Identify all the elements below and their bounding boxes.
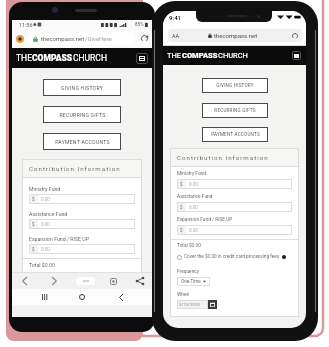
staticText: CHURCH: [218, 51, 248, 60]
staticText: 0.00: [189, 205, 198, 210]
staticText: 11:56: [19, 22, 33, 28]
staticText: RECURRING GIFTS: [214, 108, 256, 113]
button[interactable]: GIVING HISTORY: [43, 79, 121, 96]
staticText: $: [180, 228, 183, 233]
staticText: Ministry Fund: [29, 186, 61, 192]
staticText: $: [180, 205, 183, 210]
staticText: $: [32, 247, 35, 252]
staticText: THE: [16, 53, 32, 63]
button[interactable]: PAYMENT ACCOUNTS: [202, 127, 268, 142]
staticText: COMPASS: [182, 51, 218, 60]
button[interactable]: Menu: [136, 53, 148, 64]
button[interactable]: GIVING HISTORY: [202, 78, 268, 93]
button[interactable]: PAYMENT ACCOUNTS: [43, 133, 121, 150]
staticText: RECURRING GIFTS: [59, 112, 106, 118]
staticText: Expansion Fund / RISE UP: [29, 236, 89, 242]
button[interactable]: Forward: [46, 273, 62, 289]
staticText: thecompass.net: [41, 35, 85, 42]
staticText: Total $0.00: [29, 262, 55, 268]
staticText: 0.00: [189, 182, 198, 187]
staticText: Assistance Fund: [29, 211, 68, 217]
button[interactable]: Home: [76, 277, 95, 285]
staticText: Cover the $0.00 in credit card processin…: [184, 254, 280, 260]
button[interactable]: $: [29, 244, 135, 254]
button[interactable]: $: [29, 219, 135, 229]
staticText: 0.00: [41, 247, 50, 252]
button[interactable]: $: [177, 225, 292, 235]
staticText: AA: [172, 33, 180, 39]
button[interactable]: Menu: [292, 51, 301, 60]
button[interactable]: Cover the $0.00 in credit card processin…: [177, 254, 286, 260]
staticText: Ministry Fund: [177, 171, 206, 177]
button[interactable]: RECURRING GIFTS: [43, 106, 121, 123]
button[interactable]: 3/10/2020: [177, 300, 208, 309]
staticText: Assistance Fund: [177, 194, 213, 200]
button[interactable]: $: [177, 179, 292, 189]
staticText: COMPASS: [32, 53, 73, 63]
staticText: GIVING HISTORY: [61, 85, 103, 91]
staticText: Contribution Information: [177, 154, 269, 161]
staticText: Expansion Fund / RISE UP: [177, 217, 233, 223]
button[interactable]: Reload: [139, 33, 150, 44]
staticText: 0.00: [41, 197, 50, 202]
staticText: When: [177, 292, 190, 298]
staticText: 9:41: [169, 14, 182, 21]
button[interactable]: AA: [168, 29, 302, 42]
staticText: Total $0.00: [177, 243, 201, 249]
button[interactable]: Reload: [291, 32, 299, 40]
staticText: PAYMENT ACCOUNTS: [55, 139, 110, 145]
staticText: PAYMENT ACCOUNTS: [211, 132, 260, 137]
staticText: Contribution Information: [29, 165, 121, 172]
staticText: Frequency: [177, 269, 200, 275]
button[interactable]: $: [177, 202, 292, 212]
staticText: $: [32, 222, 35, 227]
button[interactable]: THE: [163, 46, 306, 65]
button[interactable]: RECURRING GIFTS: [202, 103, 268, 118]
button[interactable]: Back: [114, 290, 128, 304]
button[interactable]: One-Time: [177, 277, 210, 286]
staticText: $: [180, 182, 183, 187]
staticText: 85%: [135, 22, 144, 27]
staticText: 3/10/2020: [179, 302, 200, 307]
staticText: CHURCH: [73, 53, 107, 63]
button[interactable]: Share: [132, 273, 148, 289]
button[interactable]: THE: [12, 48, 152, 68]
staticText: THE: [167, 51, 182, 60]
staticText: One-Time: [181, 279, 201, 284]
staticText: thecompass.net: [214, 32, 258, 39]
button[interactable]: $: [29, 194, 135, 204]
button[interactable]: thecompass.net: [28, 32, 135, 45]
staticText: GIVING HISTORY: [216, 83, 254, 88]
staticText: 0.00: [41, 222, 50, 227]
button[interactable]: Pick date: [208, 300, 217, 309]
button[interactable]: Back: [16, 273, 32, 289]
button[interactable]: Home: [75, 290, 89, 304]
button[interactable]: Recents: [37, 290, 51, 304]
staticText: 0.00: [189, 228, 198, 233]
staticText: $: [32, 197, 35, 202]
button[interactable]: Tabs: [108, 276, 118, 286]
staticText: /GiveHere: [85, 35, 112, 42]
